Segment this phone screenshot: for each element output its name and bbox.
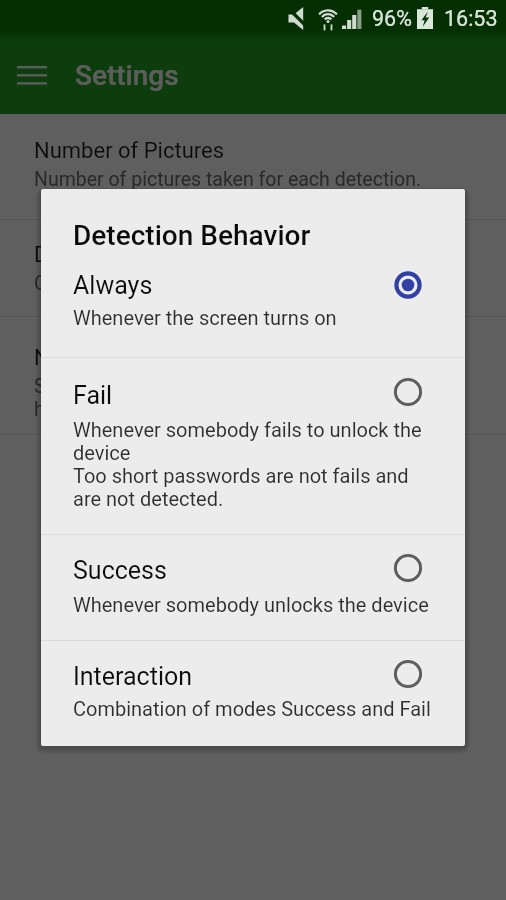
staticText: Choose when the camera takes pictures. <box>34 272 386 295</box>
button[interactable]: Success <box>41 556 465 641</box>
staticText: Notifications <box>34 345 160 371</box>
staticText: are not detected. <box>73 487 224 510</box>
staticText: 16:53 <box>444 6 498 31</box>
staticText: 96% <box>372 6 412 31</box>
staticText: Always <box>73 271 153 300</box>
staticText: Interaction <box>73 662 193 691</box>
button[interactable]: Interaction <box>41 662 465 746</box>
staticText: Number of Pictures <box>34 138 225 164</box>
staticText: has been detected. <box>34 398 199 421</box>
staticText: Too short passwords are not fails and <box>73 464 409 487</box>
staticText: Detection Behavior <box>34 242 219 268</box>
button[interactable]: Detection Behavior <box>0 220 506 316</box>
staticText: Number of pictures taken for each detect… <box>34 168 422 191</box>
button[interactable]: Notifications <box>0 317 506 434</box>
button[interactable]: Number of Pictures <box>0 114 506 219</box>
staticText: Settings <box>75 59 179 92</box>
staticText: device <box>73 441 131 464</box>
staticText: Success <box>73 556 167 585</box>
staticText: Whenever the screen turns on <box>73 306 337 329</box>
staticText: Whenever somebody unlocks the device <box>73 593 429 616</box>
staticText: Combination of modes Success and Fail <box>73 697 431 720</box>
staticText: Detection Behavior <box>73 219 311 252</box>
button[interactable]: Open navigation drawer <box>8 51 56 99</box>
staticText: Whenever somebody fails to unlock the <box>73 418 422 441</box>
button[interactable]: Always <box>41 271 465 357</box>
staticText: Fail <box>73 381 113 410</box>
staticText: Show a notification when an intruder <box>34 375 350 398</box>
button[interactable]: Fail <box>41 381 465 534</box>
